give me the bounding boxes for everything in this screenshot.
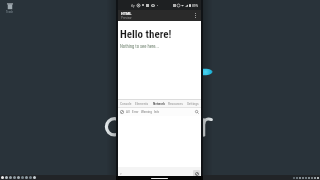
button[interactable]: More options [190,10,201,21]
button[interactable]: HTML [118,10,201,21]
other: Search [195,110,199,114]
button[interactable] [25,176,28,179]
staticText: Trash [6,10,13,14]
button[interactable] [1,176,4,179]
button[interactable] [33,176,36,179]
staticText: Nothing to see here... [120,44,159,49]
staticText: Console [120,102,132,106]
button[interactable] [21,176,24,179]
button[interactable] [13,176,16,179]
button[interactable]: Error [132,110,139,114]
button[interactable]: Info [154,110,160,114]
staticText: HTML [121,11,132,16]
other: Clear [120,110,124,114]
button[interactable]: Elements [134,100,150,107]
button[interactable]: Clear console [193,170,200,177]
staticText: tly [131,3,135,7]
staticText: Hello there! [120,28,172,41]
button[interactable]: All [126,110,130,114]
staticText: Settings [187,102,199,106]
staticText: > [120,172,122,176]
button[interactable]: Settings [184,100,201,107]
button[interactable]: Resources [167,100,184,107]
staticText: Network [153,102,165,106]
button[interactable] [5,176,8,179]
button[interactable] [29,176,32,179]
button[interactable]: Console [118,100,134,107]
button[interactable]: Trash [2,2,17,14]
staticText: Elements [135,102,149,106]
button[interactable] [17,176,20,179]
button[interactable]: Warning [141,110,152,114]
button[interactable] [9,176,12,179]
staticText: Preview [121,16,132,20]
staticText: 89% [192,3,199,7]
staticText: Resources [168,102,183,106]
button[interactable]: Network [150,100,167,107]
